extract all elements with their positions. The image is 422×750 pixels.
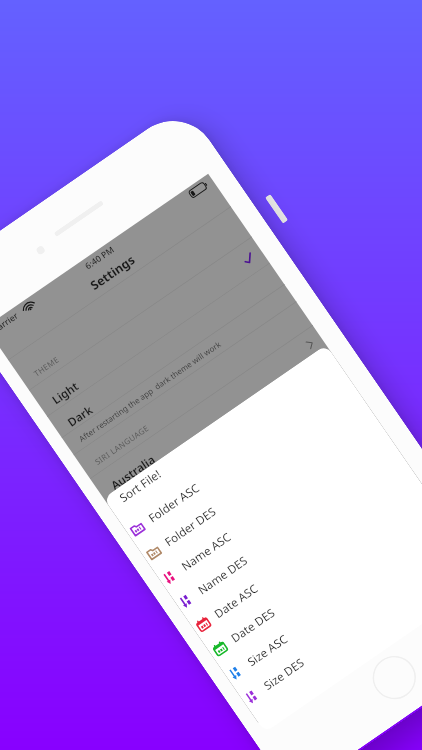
button[interactable]: Folder ASC	[120, 369, 359, 546]
staticText: Settings	[87, 251, 138, 294]
button[interactable]: Name DES	[170, 441, 409, 618]
staticText: Australia	[108, 452, 158, 493]
staticText: Folder DES	[161, 503, 219, 550]
staticText: Dark	[64, 402, 96, 430]
staticText: Name ASC	[178, 529, 234, 574]
staticText: Folder ASC	[145, 480, 202, 526]
staticText: Date ASC	[211, 580, 261, 622]
button[interactable]: Folder DES	[136, 393, 375, 570]
staticText: Light	[49, 378, 81, 408]
button[interactable]: Light	[35, 246, 271, 418]
button[interactable]: Size ASC	[219, 513, 422, 690]
staticText: 6:40 PM	[82, 243, 116, 271]
staticText: Size DES	[260, 655, 307, 693]
other: Home	[364, 647, 422, 708]
staticText: Carrier	[0, 309, 20, 335]
staticText: SIRI LANGUAGE	[92, 422, 151, 467]
button[interactable]: Australia	[94, 332, 330, 504]
staticText: Date DES	[228, 605, 278, 646]
staticText: Sort File!	[116, 466, 164, 506]
staticText: Name DES	[195, 552, 251, 598]
staticText: Size ASC	[244, 631, 291, 670]
button[interactable]: Date DES	[203, 489, 422, 666]
button[interactable]: Size DES	[235, 536, 422, 714]
staticText: THEME	[32, 354, 61, 379]
button[interactable]: Date ASC	[186, 465, 422, 642]
button[interactable]: Name ASC	[153, 417, 392, 594]
staticText: After restarting the app dark theme will…	[77, 338, 223, 444]
button[interactable]: Dark	[51, 269, 287, 441]
